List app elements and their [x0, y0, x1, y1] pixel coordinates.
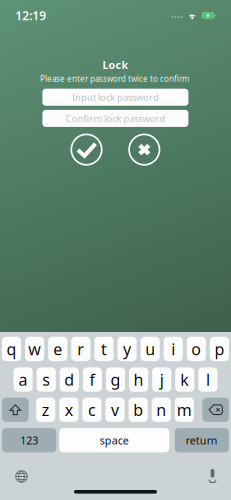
staticText: Lock — [102, 58, 128, 72]
staticText: f — [89, 369, 95, 390]
button[interactable]: t — [94, 337, 113, 361]
button[interactable]: s — [37, 367, 56, 392]
staticText: o — [191, 338, 201, 359]
staticText: k — [180, 369, 189, 390]
button[interactable]: i — [164, 337, 183, 361]
staticText: 123 — [20, 433, 38, 447]
staticText: z — [42, 399, 50, 420]
button[interactable]: space — [59, 428, 169, 452]
staticText: u — [145, 338, 155, 359]
button[interactable]: r — [71, 337, 90, 361]
button[interactable]: e — [48, 337, 67, 361]
staticText: m — [177, 399, 192, 420]
button[interactable]: Confirm — [71, 134, 102, 165]
button[interactable]: d — [60, 367, 79, 392]
button[interactable]: l — [198, 367, 217, 392]
staticText: b — [133, 399, 143, 420]
button[interactable]: Delete — [202, 398, 229, 422]
staticText: return — [186, 433, 218, 447]
button[interactable]: Shift — [2, 398, 29, 422]
button[interactable]: y — [117, 337, 137, 361]
button[interactable]: n — [152, 398, 171, 422]
button[interactable]: h — [129, 367, 148, 392]
button[interactable]: Input lock password — [42, 89, 188, 106]
staticText: p — [214, 338, 224, 359]
staticText: v — [111, 399, 119, 420]
staticText: s — [42, 369, 50, 390]
staticText: n — [156, 399, 166, 420]
button[interactable]: 123 — [2, 428, 56, 452]
staticText: 12:19 — [15, 7, 46, 23]
staticText: space — [100, 433, 129, 447]
button[interactable]: o — [187, 337, 206, 361]
staticText: j — [160, 369, 164, 390]
button[interactable]: j — [152, 367, 171, 392]
staticText: x — [65, 399, 73, 420]
button[interactable]: Cancel — [129, 134, 160, 165]
button[interactable]: b — [129, 398, 148, 422]
staticText: d — [64, 369, 74, 390]
button[interactable]: k — [175, 367, 194, 392]
button[interactable]: x — [59, 398, 78, 422]
staticText: c — [88, 399, 96, 420]
staticText: Input lock password — [72, 91, 159, 103]
button[interactable]: Confirm lock password — [42, 110, 188, 127]
button[interactable]: c — [82, 398, 101, 422]
staticText: h — [134, 369, 144, 390]
button[interactable]: v — [105, 398, 125, 422]
staticText: g — [110, 369, 120, 390]
staticText: y — [123, 338, 131, 359]
button[interactable]: f — [83, 367, 102, 392]
button[interactable]: m — [175, 398, 194, 422]
staticText: i — [171, 338, 175, 359]
staticText: e — [53, 338, 62, 359]
staticText: a — [19, 369, 28, 390]
staticText: r — [77, 338, 84, 359]
button[interactable]: g — [106, 367, 125, 392]
button[interactable]: Dictate — [197, 464, 227, 488]
button[interactable]: w — [25, 337, 44, 361]
staticText: l — [206, 369, 210, 390]
staticText: q — [7, 338, 17, 359]
staticText: Please enter password twice to confirm — [40, 73, 189, 84]
button[interactable]: q — [2, 337, 21, 361]
button[interactable]: Next keyboard — [6, 464, 36, 488]
button[interactable]: p — [210, 337, 229, 361]
staticText: w — [28, 338, 41, 359]
button[interactable]: return — [175, 428, 229, 452]
button[interactable]: z — [36, 398, 55, 422]
button[interactable]: a — [14, 367, 33, 392]
staticText: t — [101, 338, 107, 359]
button[interactable]: u — [141, 337, 160, 361]
staticText: Confirm lock password — [65, 112, 165, 125]
